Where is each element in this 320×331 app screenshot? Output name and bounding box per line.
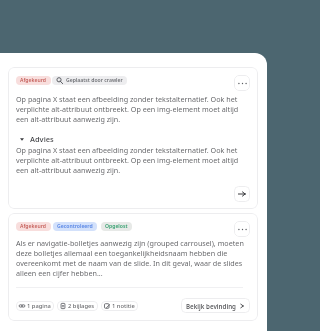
staticText: Opgelost (105, 223, 128, 230)
button[interactable]: Afgekeurd (16, 222, 51, 231)
staticText: 2 bijlages (68, 302, 95, 310)
staticText: 1 pagina (27, 302, 51, 310)
staticText: Als er navigatie-bolletjes aanwezig zijn… (16, 238, 250, 278)
button[interactable]: 1 notitie (101, 301, 138, 311)
button[interactable]: Opgelost (101, 222, 132, 231)
button[interactable]: 2 bijlages (57, 301, 98, 311)
button[interactable]: Volgende (234, 186, 250, 202)
staticText: 1 notitie (112, 302, 135, 310)
staticText: Op pagina X staat een afbeelding zonder … (16, 145, 250, 175)
button[interactable]: Afgekeurd (16, 76, 51, 85)
staticText: Afgekeurd (20, 223, 47, 230)
button[interactable]: Bekijk bevinding (181, 298, 250, 313)
staticText: Gecontroleerd (57, 223, 93, 230)
button[interactable]: Geplaatst door crawler (52, 76, 127, 85)
staticText: Afgekeurd (20, 77, 47, 84)
button[interactable]: Gecontroleerd (53, 222, 97, 231)
button[interactable]: Meer opties (234, 221, 250, 237)
staticText: Advies (30, 134, 54, 144)
button[interactable]: Meer opties (234, 75, 250, 91)
staticText: Bekijk bevinding (186, 302, 236, 310)
button[interactable]: 1 pagina (16, 301, 54, 311)
staticText: Op pagina X staat een afbeelding zonder … (16, 94, 250, 124)
staticText: Geplaatst door crawler (66, 77, 123, 84)
